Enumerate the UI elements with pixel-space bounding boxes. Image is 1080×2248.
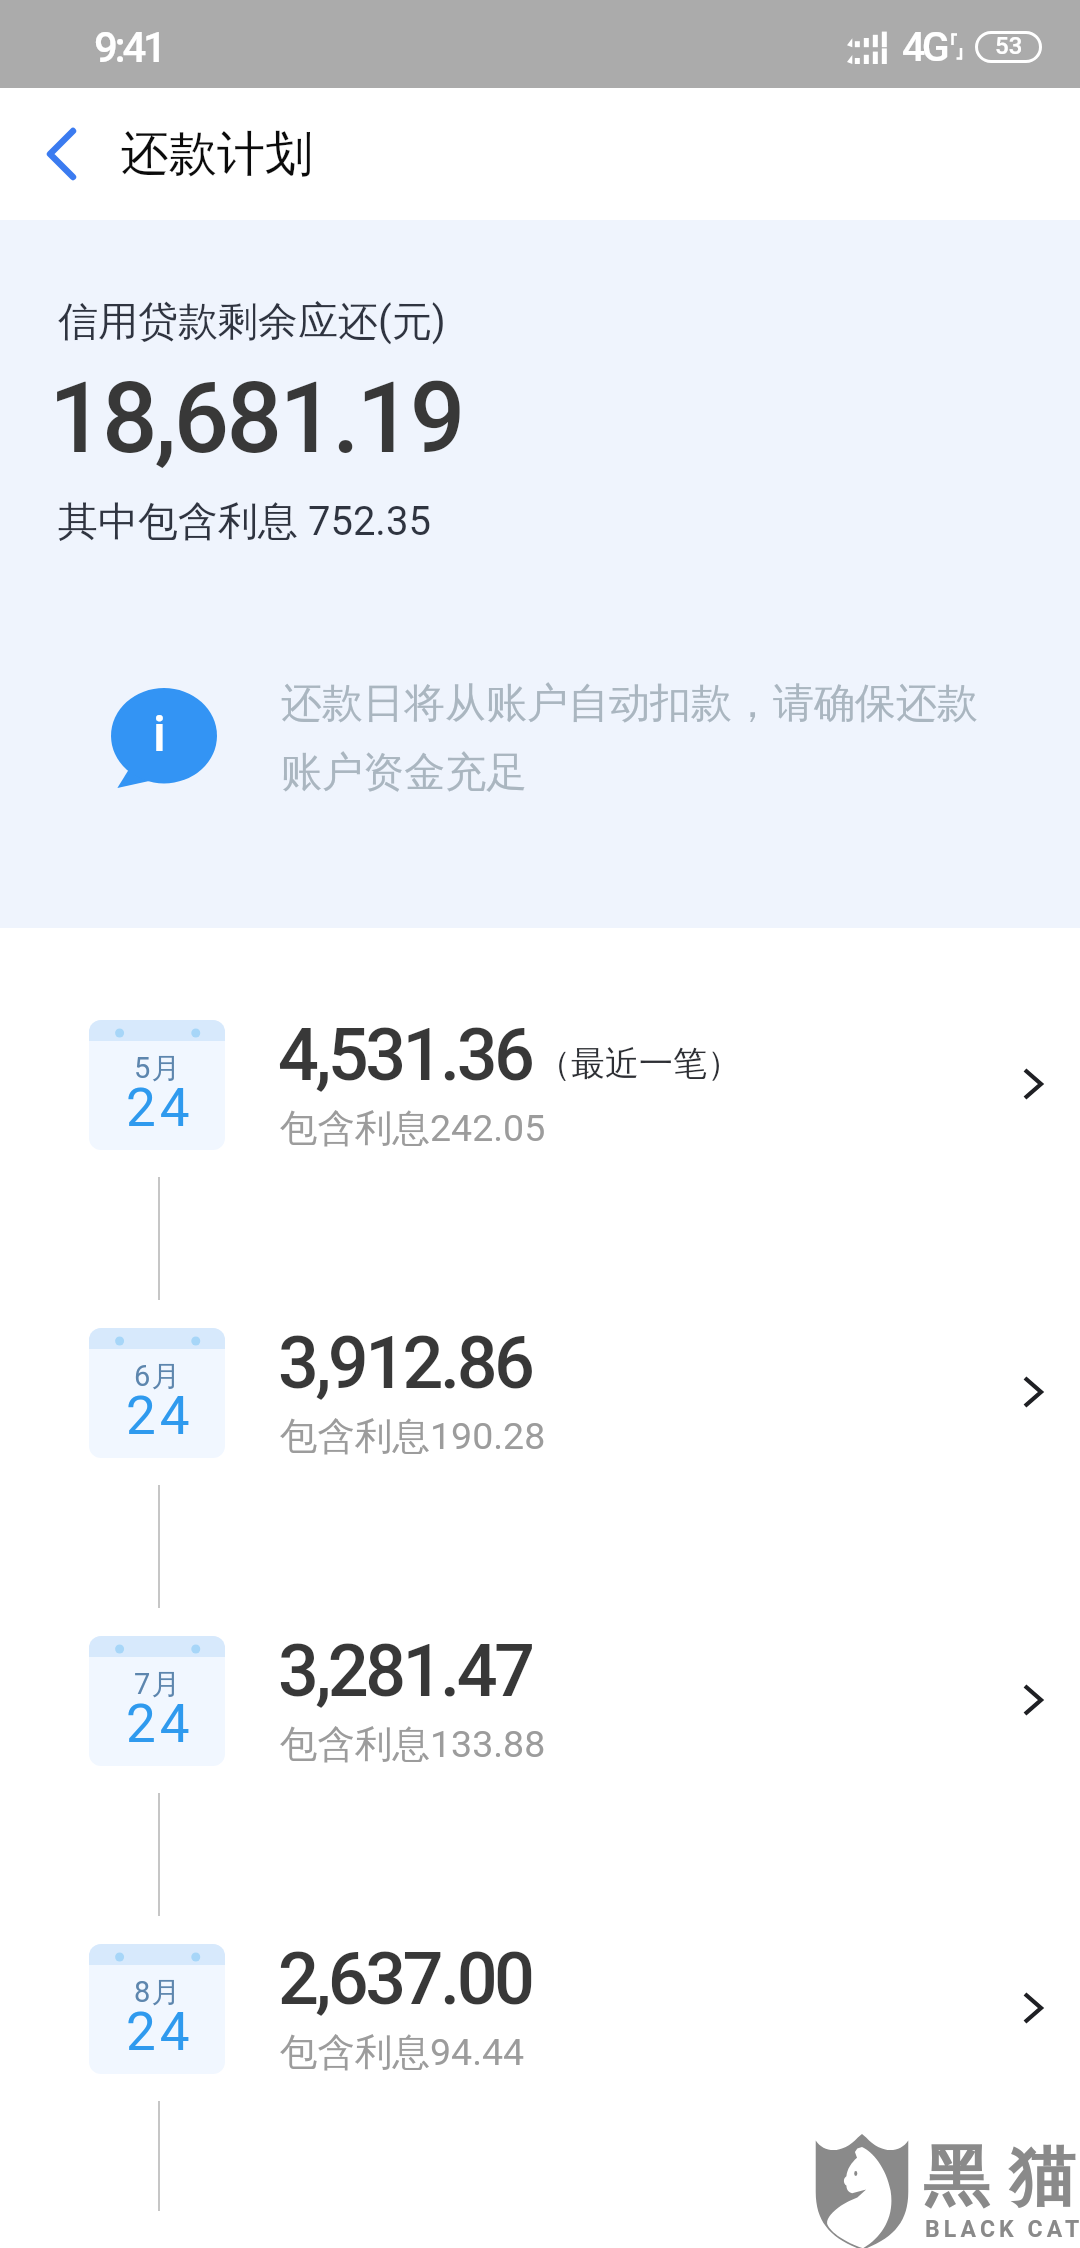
button[interactable]: 8月 [0, 1914, 1080, 2082]
staticText: 2,637.00 [278, 1937, 532, 2021]
staticText: 24 [126, 2001, 194, 2063]
staticText: i [153, 705, 166, 764]
staticText: 6月 [134, 1358, 183, 1395]
staticText: 24 [126, 1077, 194, 1139]
staticText: 黑猫 [913, 2135, 1080, 2218]
staticText: 包含利息94.44 [280, 2029, 525, 2076]
staticText: 4,531.36 [278, 1013, 532, 1097]
staticText: 3,281.47 [278, 1629, 532, 1713]
staticText: 24 [126, 1385, 194, 1447]
staticText: 18,681.19 [49, 361, 463, 476]
staticText: 其中包含利息 752.35 [58, 496, 431, 546]
staticText: （最近一笔） [537, 1042, 741, 1085]
staticText: 包含利息242.05 [280, 1105, 546, 1152]
staticText: 8月 [134, 1974, 183, 2011]
staticText: 5月 [134, 1050, 183, 1087]
staticText: 包含利息190.28 [280, 1413, 546, 1460]
button[interactable]: 7月 [0, 1606, 1080, 1774]
staticText: 24 [126, 1693, 194, 1755]
staticText: 信用贷款剩余应还(元) [58, 296, 446, 346]
staticText: 3,912.86 [278, 1321, 532, 1405]
staticText: 53 [995, 32, 1023, 60]
staticText: 7月 [134, 1666, 183, 1703]
button[interactable]: 5月 [0, 990, 1080, 1158]
button[interactable]: 6月 [0, 1298, 1080, 1466]
staticText: 包含利息133.88 [280, 1721, 546, 1768]
staticText: 9:41 [94, 23, 164, 72]
staticText: BLACK CAT [925, 2216, 1080, 2243]
staticText: 4G [902, 23, 947, 71]
button[interactable]: Back [6, 99, 116, 209]
staticText: 还款日将从账户自动扣款，请确保还款账户资金充足 [281, 678, 981, 798]
staticText: 还款计划 [121, 124, 313, 184]
